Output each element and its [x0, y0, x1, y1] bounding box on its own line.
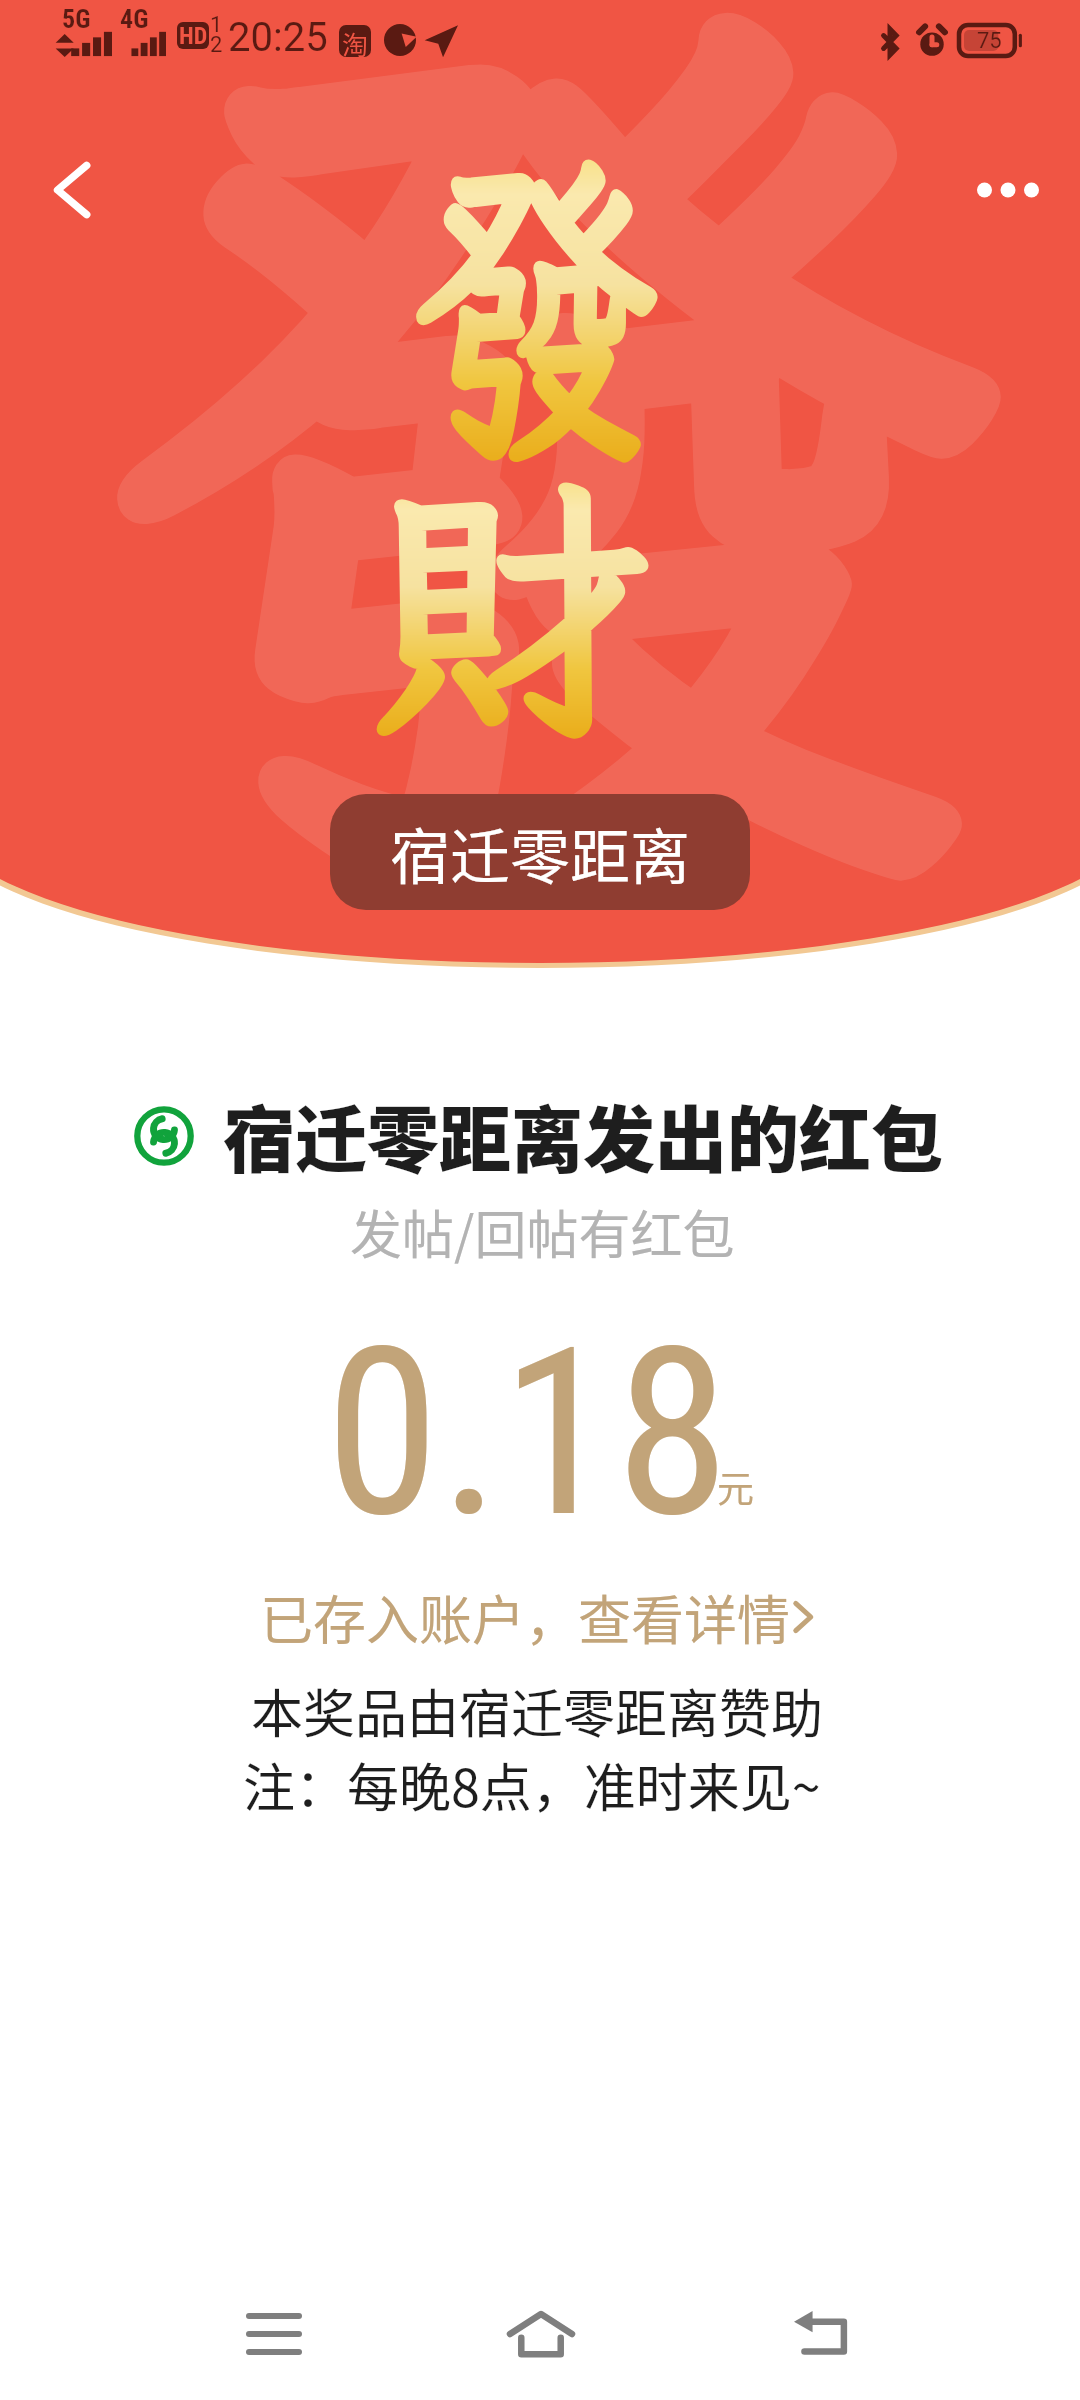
- staticText: 20:25: [228, 14, 328, 61]
- staticText: 注：每晚8点，准时来见~: [243, 1747, 821, 1822]
- staticText: 75: [977, 28, 1002, 54]
- staticText: 2: [210, 32, 223, 58]
- button[interactable]: Back: [21, 140, 121, 240]
- staticText: 財: [371, 421, 651, 787]
- button[interactable]: Back: [748, 2268, 898, 2400]
- staticText: 0.18: [325, 1298, 730, 1538]
- staticText: 1: [210, 12, 223, 38]
- staticText: 發: [408, 90, 661, 521]
- staticText: 宿迁零距离: [390, 809, 690, 896]
- staticText: 發: [55, 0, 1046, 1000]
- staticText: 發: [408, 90, 661, 521]
- button[interactable]: 已存入账户，查看详情: [260, 1577, 822, 1657]
- button[interactable]: 宿迁零距离: [330, 794, 750, 910]
- staticText: HD: [179, 22, 208, 49]
- button[interactable]: Recent apps: [199, 2268, 349, 2400]
- button[interactable]: Home: [466, 2268, 616, 2400]
- staticText: 宿迁零距离发出的红包: [223, 1082, 944, 1186]
- staticText: 5G: [62, 4, 91, 34]
- staticText: 发帖/回帖有红包: [350, 1194, 735, 1269]
- staticText: 淘: [342, 25, 369, 57]
- staticText: 本奖品由宿迁零距离赞助: [251, 1673, 824, 1748]
- staticText: 已存入账户，查看详情: [260, 1579, 790, 1656]
- button[interactable]: More options: [958, 140, 1058, 240]
- staticText: 元: [717, 1460, 754, 1514]
- staticText: 財: [371, 421, 651, 787]
- staticText: 發: [55, 0, 1046, 1000]
- staticText: 4G: [120, 4, 149, 34]
